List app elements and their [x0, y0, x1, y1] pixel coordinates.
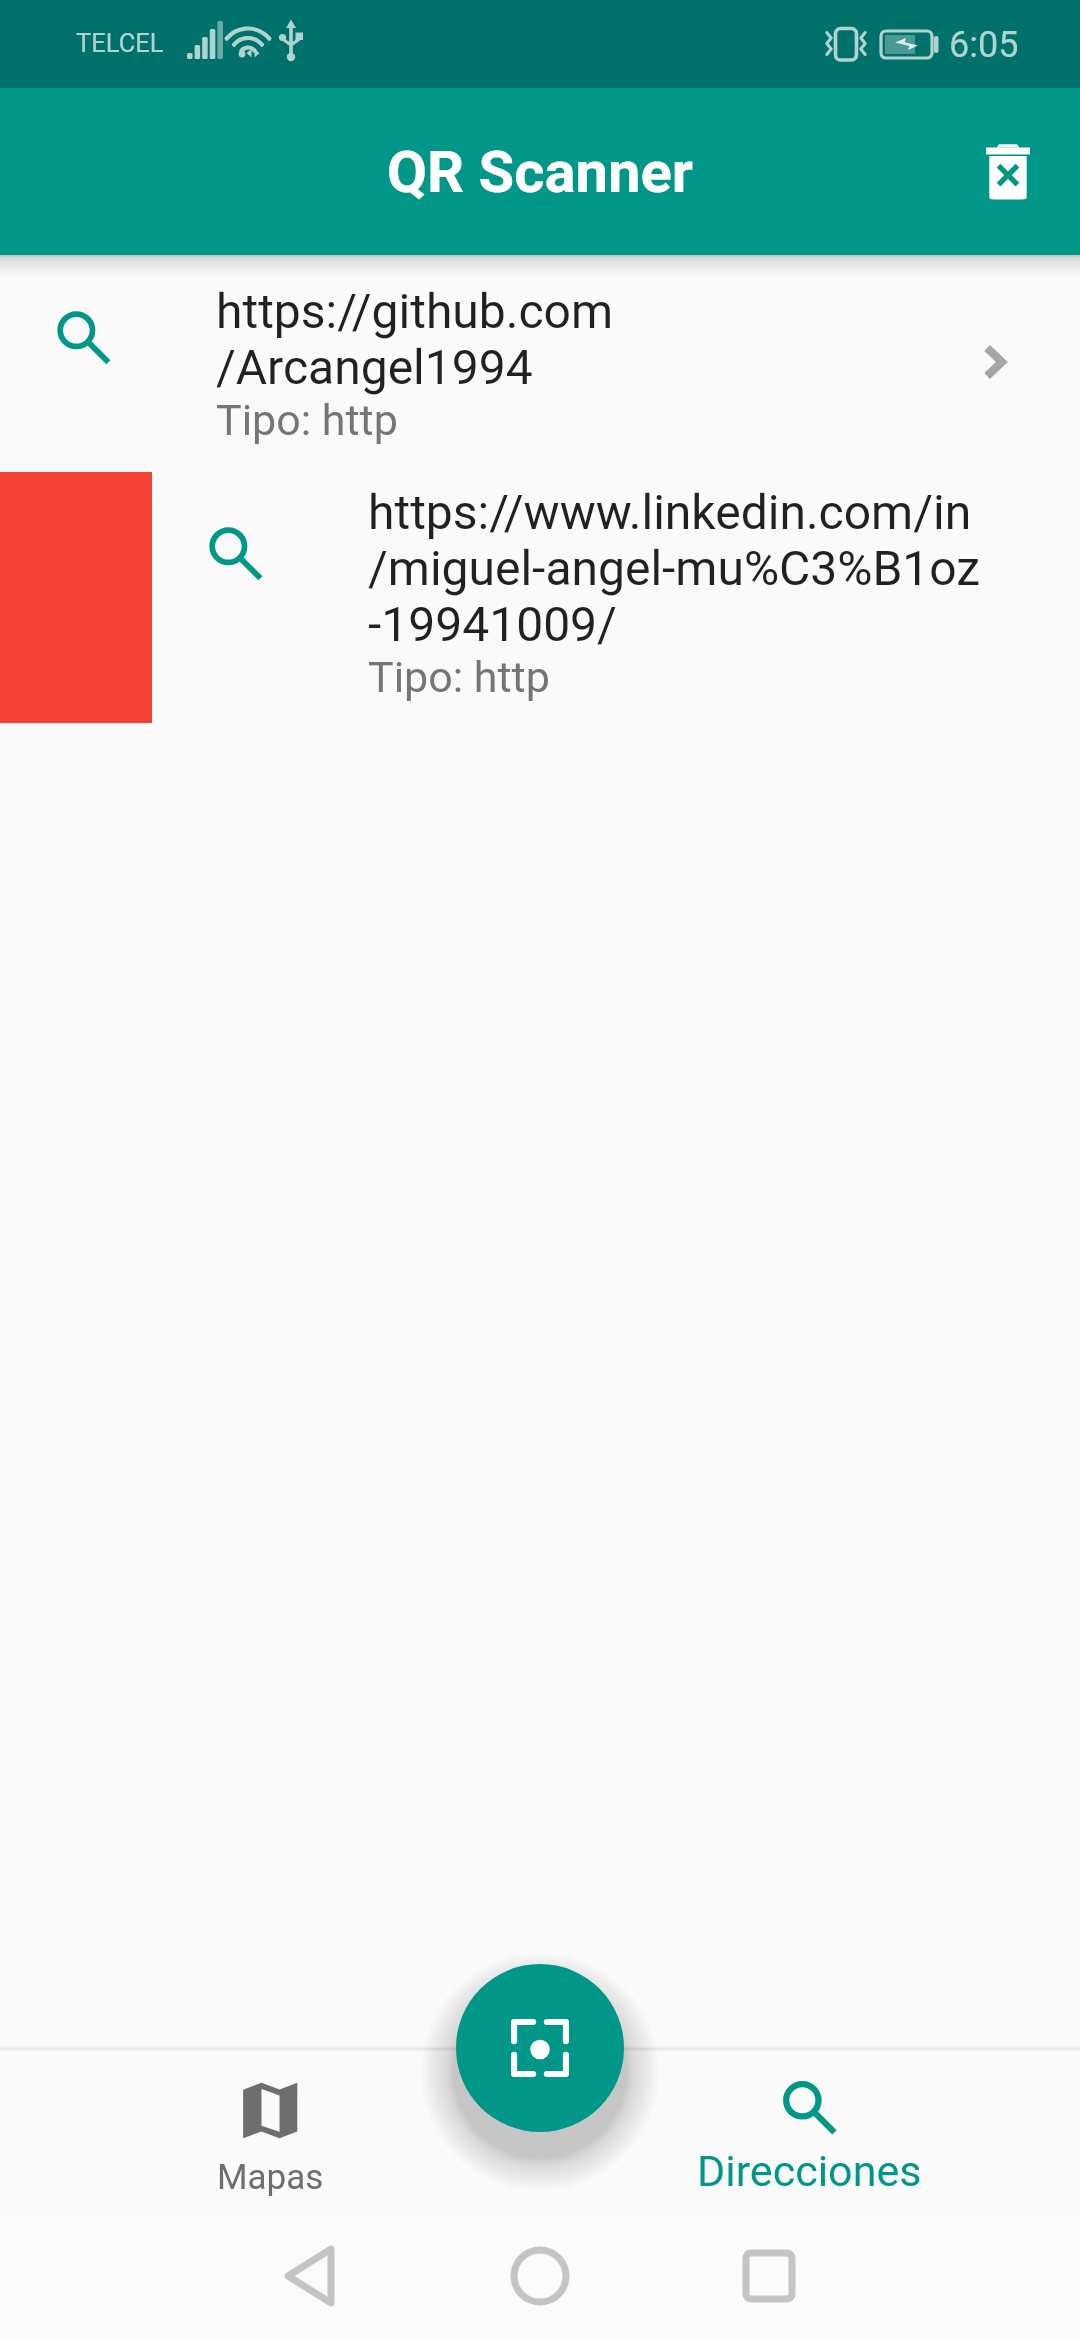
staticText: Tipo: http	[216, 395, 398, 445]
staticText: TELCEL	[76, 28, 164, 58]
button[interactable]: Mapas	[0, 2046, 540, 2212]
staticText: QR Scanner	[387, 138, 694, 206]
staticText: Mapas	[217, 2157, 324, 2198]
button[interactable]: Direcciones	[539, 2046, 1079, 2212]
staticText: https://github.com	[216, 283, 613, 339]
button[interactable]: Scan QR code	[456, 1964, 624, 2132]
staticText: 6:05	[949, 24, 1019, 66]
staticText: https://www.linkedin.com/in	[368, 484, 972, 540]
button[interactable]: https://www.linkedin.com/in	[152, 472, 1080, 723]
staticText: /miguel-angel-mu%C3%B1oz	[368, 540, 981, 596]
staticText: Direcciones	[697, 2146, 922, 2196]
staticText: -19941009/	[368, 596, 617, 652]
button[interactable]: Delete all	[952, 116, 1064, 228]
staticText: /Arcangel1994	[216, 339, 533, 395]
staticText: Tipo: http	[368, 652, 550, 702]
button[interactable]: https://github.com	[0, 255, 1080, 472]
